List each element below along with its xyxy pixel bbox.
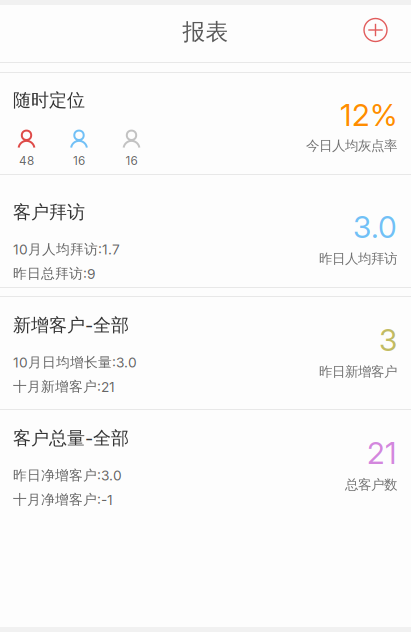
staticText: 客户拜访 [13,201,85,224]
staticText: 16 [73,154,85,168]
staticText: 总客户数 [345,476,397,493]
staticText: 21 [367,435,397,471]
button[interactable]: 随时定位 [0,73,411,174]
staticText: 10月人均拜访:1.7 [13,241,120,258]
staticText: 十月净增客户:-1 [13,491,113,508]
staticText: 十月新增客户:21 [13,378,115,395]
button[interactable]: 客户总量-全部 [0,410,411,522]
staticText: 昨日净增客户:3.0 [13,467,122,484]
staticText: 16 [125,154,137,168]
staticText: 昨日人均拜访 [319,250,397,267]
staticText: 报表 [182,18,228,46]
staticText: 48 [19,154,34,168]
button[interactable]: Add [364,18,387,41]
staticText: 10月日均增长量:3.0 [13,354,137,371]
staticText: 随时定位 [13,89,85,112]
staticText: 3.0 [353,209,397,245]
button[interactable]: 客户拜访 [0,184,411,287]
staticText: 昨日新增客户 [319,363,397,380]
staticText: 3 [379,322,397,358]
staticText: 昨日总拜访:9 [13,265,96,282]
staticText: 新增客户-全部 [13,314,129,337]
button[interactable]: 新增客户-全部 [0,297,411,409]
staticText: 今日人均灰点率 [306,137,397,154]
staticText: 客户总量-全部 [13,427,129,450]
staticText: 12% [340,97,397,133]
